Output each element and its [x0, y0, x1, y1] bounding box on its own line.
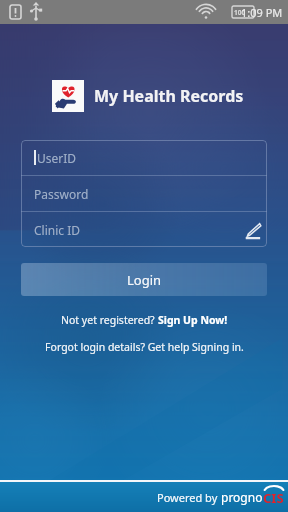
staticText: CIS — [263, 489, 284, 507]
staticText: Clinic ID — [34, 222, 80, 238]
staticText: UserID — [37, 150, 77, 166]
button[interactable]: Edit Clinic ID — [237, 215, 267, 245]
button[interactable]: Forgot login details? Get help Signing i… — [0, 340, 288, 354]
button[interactable]: UserID — [21, 140, 267, 175]
staticText: 1:09 PM — [241, 5, 283, 20]
button[interactable]: Not yet registered? — [0, 313, 288, 327]
button[interactable]: Password — [21, 176, 267, 211]
staticText: 100 — [234, 8, 246, 17]
staticText: Password — [34, 186, 89, 202]
staticText: Forgot login details? Get help Signing i… — [45, 340, 244, 354]
staticText: Login — [127, 271, 162, 289]
staticText: progno — [221, 489, 263, 505]
staticText: Sign Up Now! — [158, 313, 228, 327]
staticText: Powered by — [157, 490, 221, 505]
staticText: Not yet registered? — [61, 313, 158, 327]
button[interactable]: Login — [21, 263, 267, 296]
staticText: My Health Records — [94, 85, 244, 107]
button[interactable]: Clinic ID — [21, 212, 267, 247]
